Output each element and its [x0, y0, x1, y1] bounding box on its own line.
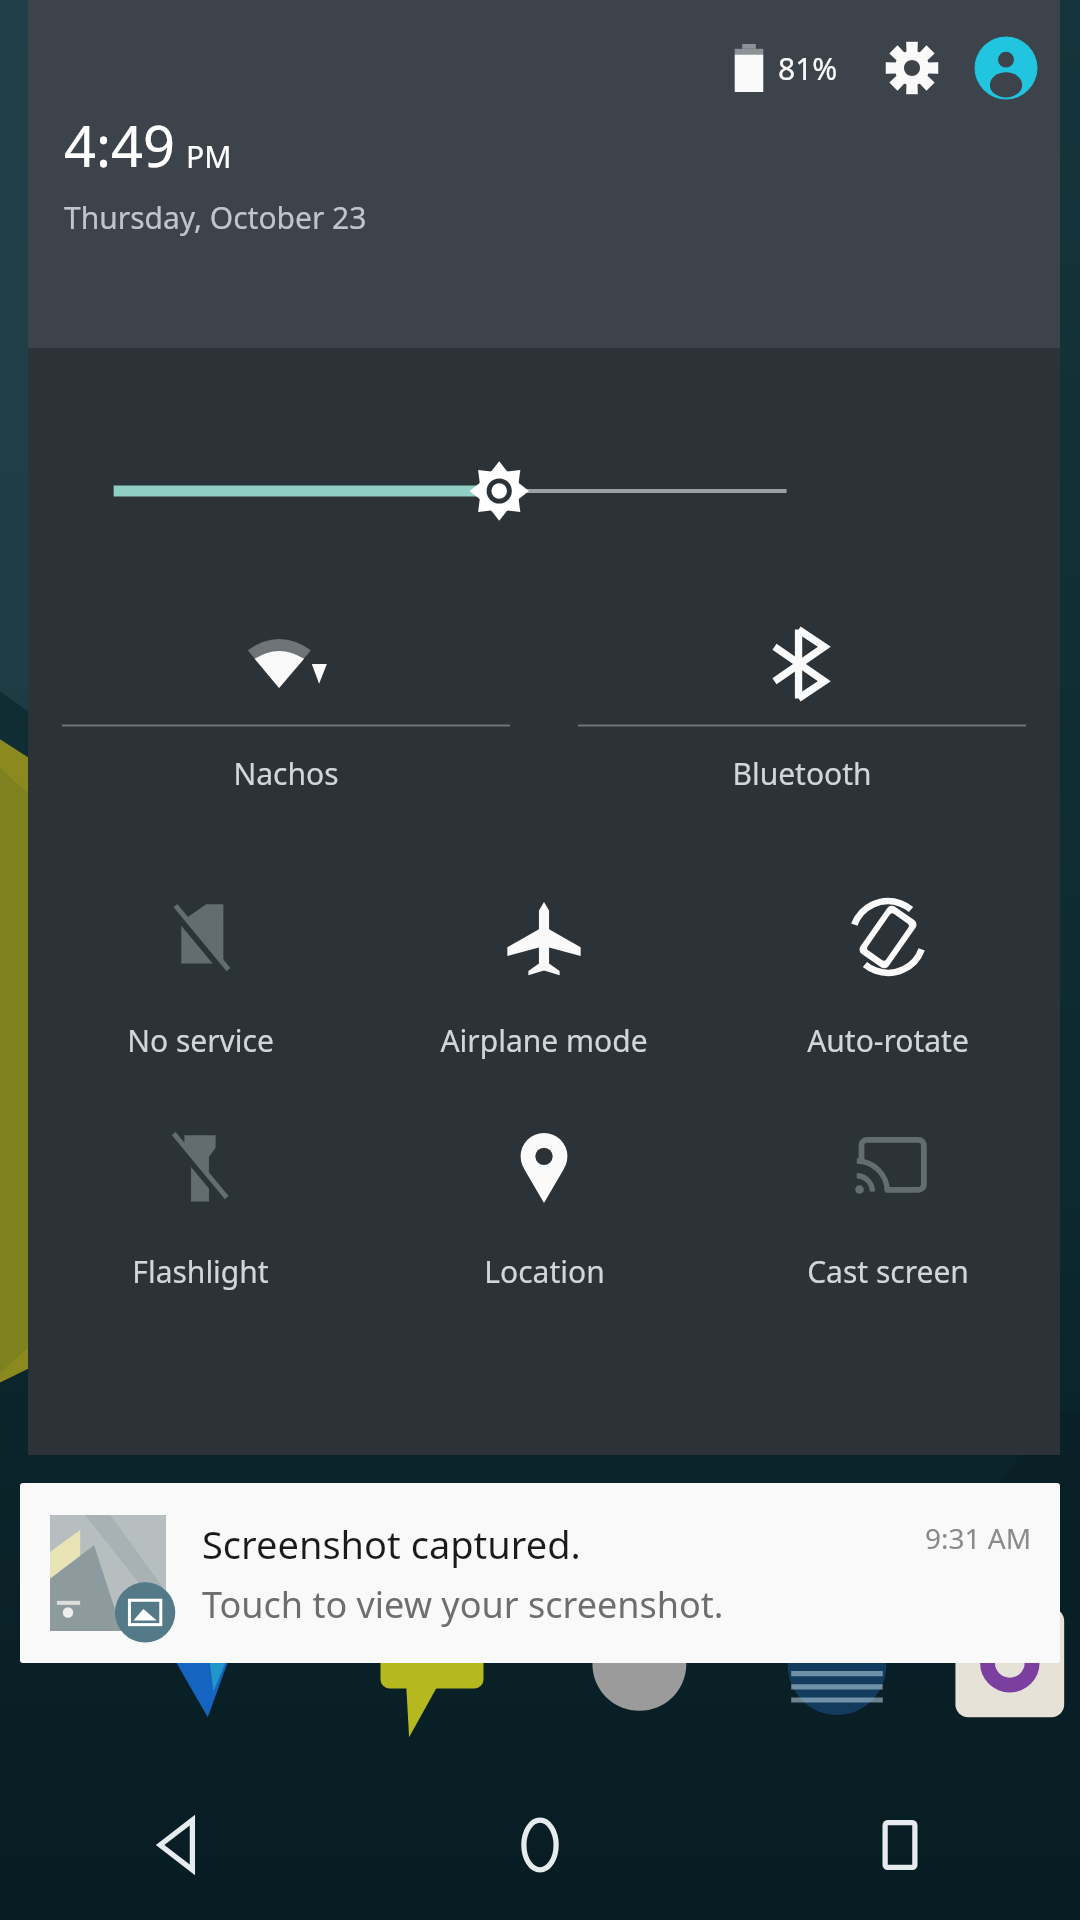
button[interactable]: Home	[360, 1770, 720, 1920]
button[interactable]: Brightness	[28, 456, 1060, 526]
staticText: Nachos	[233, 753, 339, 794]
button[interactable]: Settings	[880, 36, 944, 100]
button[interactable]: No service	[28, 882, 372, 1061]
staticText: Screenshot captured.	[202, 1518, 581, 1570]
button[interactable]: Flashlight	[28, 1113, 372, 1292]
button[interactable]: Screenshot captured.	[20, 1483, 1060, 1663]
button[interactable]: Nachos	[28, 604, 544, 794]
staticText: Airplane mode	[440, 1020, 648, 1061]
staticText: Bluetooth	[732, 753, 872, 794]
button[interactable]: Back	[0, 1770, 360, 1920]
button[interactable]: Location	[372, 1113, 716, 1292]
staticText: Touch to view your screenshot.	[202, 1580, 724, 1629]
button[interactable]: Airplane mode	[372, 882, 716, 1061]
staticText: 81%	[778, 48, 838, 89]
button[interactable]: Auto-rotate	[716, 882, 1060, 1061]
staticText: Cast screen	[807, 1251, 969, 1292]
staticText: No service	[127, 1020, 274, 1061]
button[interactable]: Bluetooth	[544, 604, 1060, 794]
button[interactable]: User profile	[974, 36, 1038, 100]
staticText: 4:49	[64, 107, 176, 183]
staticText: Auto-rotate	[807, 1020, 969, 1061]
button[interactable]: Cast screen	[716, 1113, 1060, 1292]
staticText: Thursday, October 23	[64, 197, 367, 238]
staticText: PM	[186, 136, 232, 177]
staticText: Location	[484, 1251, 605, 1292]
staticText: Flashlight	[132, 1251, 269, 1292]
staticText: 9:31 AM	[925, 1519, 1032, 1557]
button[interactable]: Recents	[720, 1770, 1080, 1920]
